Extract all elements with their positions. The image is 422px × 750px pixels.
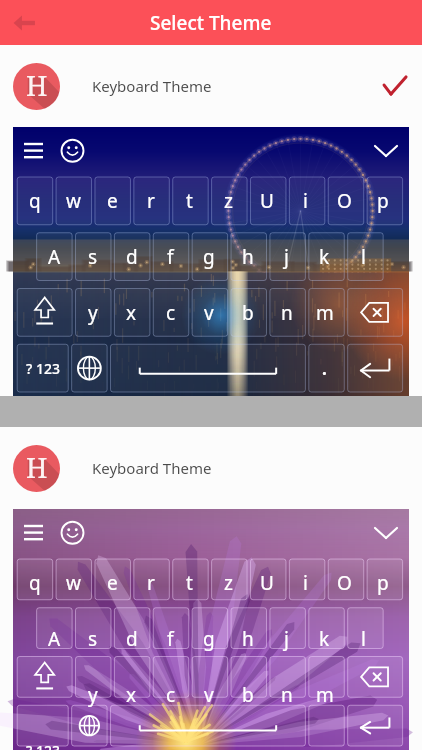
staticText: i — [303, 188, 308, 214]
button[interactable]: H — [0, 427, 422, 750]
staticText: j — [284, 244, 289, 270]
staticText: g — [203, 244, 215, 270]
staticText: ? 123 — [26, 359, 60, 378]
staticText: c — [166, 300, 176, 326]
staticText: m — [316, 300, 334, 326]
staticText: x — [126, 682, 137, 708]
staticText: r — [147, 570, 155, 596]
staticText: f — [167, 244, 174, 270]
staticText: f — [167, 626, 174, 652]
staticText: Select Theme — [150, 10, 272, 36]
staticText: m — [316, 682, 334, 708]
staticText: s — [88, 626, 98, 652]
staticText: q — [29, 570, 41, 596]
staticText: s — [88, 244, 98, 270]
staticText: b — [242, 682, 254, 708]
staticText: n — [281, 682, 293, 708]
staticText: . — [322, 739, 327, 750]
staticText: z — [224, 188, 233, 214]
staticText: b — [242, 300, 254, 326]
staticText: r — [147, 188, 155, 214]
button[interactable]: H — [0, 45, 422, 396]
staticText: v — [204, 300, 214, 326]
staticText: w — [66, 570, 81, 596]
staticText: y — [88, 682, 98, 708]
staticText: p — [377, 570, 389, 596]
staticText: v — [204, 682, 214, 708]
staticText: . — [322, 357, 327, 380]
staticText: x — [126, 300, 137, 326]
staticText: l — [361, 626, 366, 652]
staticText: U — [260, 188, 274, 214]
staticText: d — [126, 244, 138, 270]
staticText: l — [361, 244, 366, 270]
staticText: k — [319, 626, 330, 652]
staticText: y — [88, 300, 98, 326]
staticText: e — [107, 188, 118, 214]
staticText: U — [260, 570, 274, 596]
staticText: p — [377, 188, 389, 214]
staticText: O — [337, 188, 352, 214]
staticText: H — [26, 67, 48, 104]
staticText: Keyboard Theme — [92, 458, 212, 478]
staticText: k — [319, 244, 330, 270]
staticText: j — [284, 626, 289, 652]
staticText: g — [203, 626, 215, 652]
staticText: h — [242, 626, 254, 652]
staticText: Keyboard Theme — [92, 76, 212, 96]
staticText: q — [29, 188, 41, 214]
staticText: d — [126, 626, 138, 652]
staticText: H — [26, 449, 48, 486]
staticText: z — [224, 570, 233, 596]
staticText: t — [186, 570, 193, 596]
staticText: A — [48, 626, 61, 652]
staticText: c — [166, 682, 176, 708]
staticText: w — [66, 188, 81, 214]
staticText: i — [303, 570, 308, 596]
staticText: h — [242, 244, 254, 270]
staticText: n — [281, 300, 293, 326]
staticText: ? 123 — [26, 741, 60, 750]
staticText: A — [48, 244, 61, 270]
button[interactable]: Back — [11, 10, 37, 36]
staticText: e — [107, 570, 118, 596]
staticText: t — [186, 188, 193, 214]
staticText: O — [337, 570, 352, 596]
